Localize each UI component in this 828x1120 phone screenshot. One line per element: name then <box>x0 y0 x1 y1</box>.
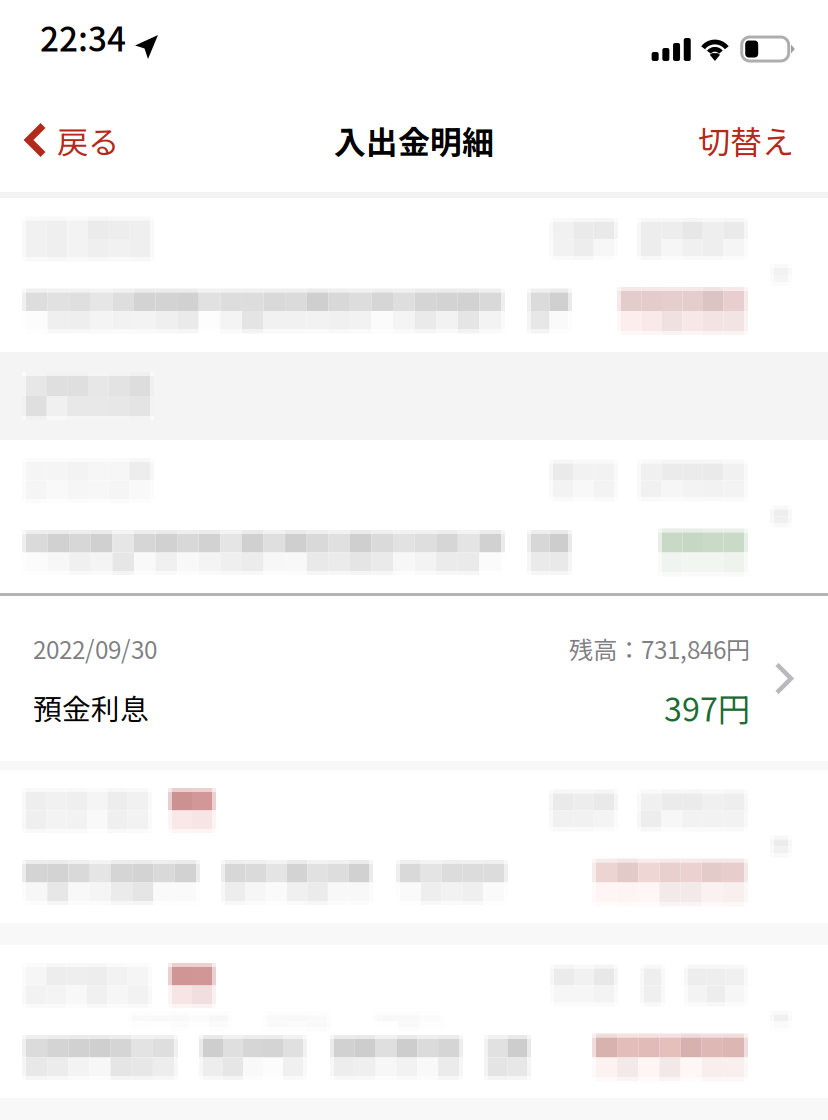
staticText: 預金利息 <box>33 687 149 728</box>
button[interactable]: 2022/09/30 <box>0 596 828 761</box>
button[interactable]: 戻る <box>0 88 135 192</box>
button[interactable] <box>0 945 828 1098</box>
staticText: 戻る <box>57 117 119 163</box>
button[interactable]: 切替え <box>668 88 828 192</box>
staticText: 397円 <box>664 684 750 731</box>
button[interactable] <box>0 198 828 352</box>
button[interactable] <box>0 440 828 593</box>
staticText: 切替え <box>698 117 794 163</box>
staticText: 残高：731,846円 <box>569 631 750 666</box>
staticText: 入出金明細 <box>334 117 494 163</box>
button[interactable] <box>0 770 828 923</box>
staticText: 22:34 <box>40 13 126 61</box>
staticText: 2022/09/30 <box>33 631 157 666</box>
